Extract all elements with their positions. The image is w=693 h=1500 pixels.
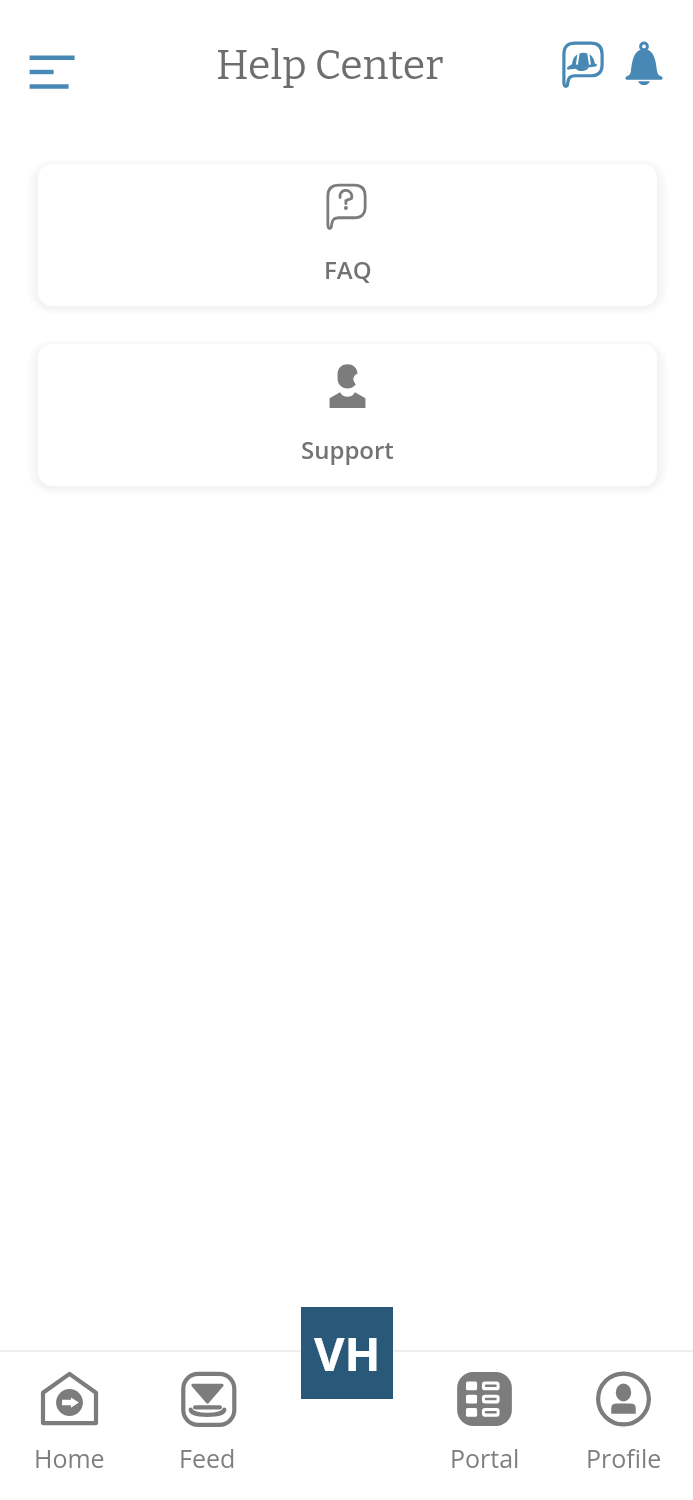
staticText: Home <box>34 1441 105 1475</box>
button[interactable]: FAQ <box>38 164 657 306</box>
button[interactable]: Feed <box>138 1352 276 1475</box>
staticText: FAQ <box>324 253 372 286</box>
button[interactable]: Menu <box>10 36 94 108</box>
button[interactable]: Home <box>0 1352 138 1475</box>
staticText: Support <box>301 433 394 466</box>
staticText: Help Center <box>216 41 444 90</box>
staticText: Profile <box>586 1441 662 1475</box>
staticText: Feed <box>179 1441 236 1475</box>
button[interactable]: Notifications <box>607 25 681 103</box>
button[interactable]: VH <box>301 1307 393 1399</box>
staticText: Portal <box>450 1441 520 1475</box>
button[interactable]: Messages <box>546 25 620 103</box>
button[interactable]: Profile <box>554 1352 693 1475</box>
button[interactable]: Portal <box>415 1352 554 1475</box>
button[interactable]: Support <box>38 344 657 486</box>
staticText: VH <box>314 1321 381 1385</box>
